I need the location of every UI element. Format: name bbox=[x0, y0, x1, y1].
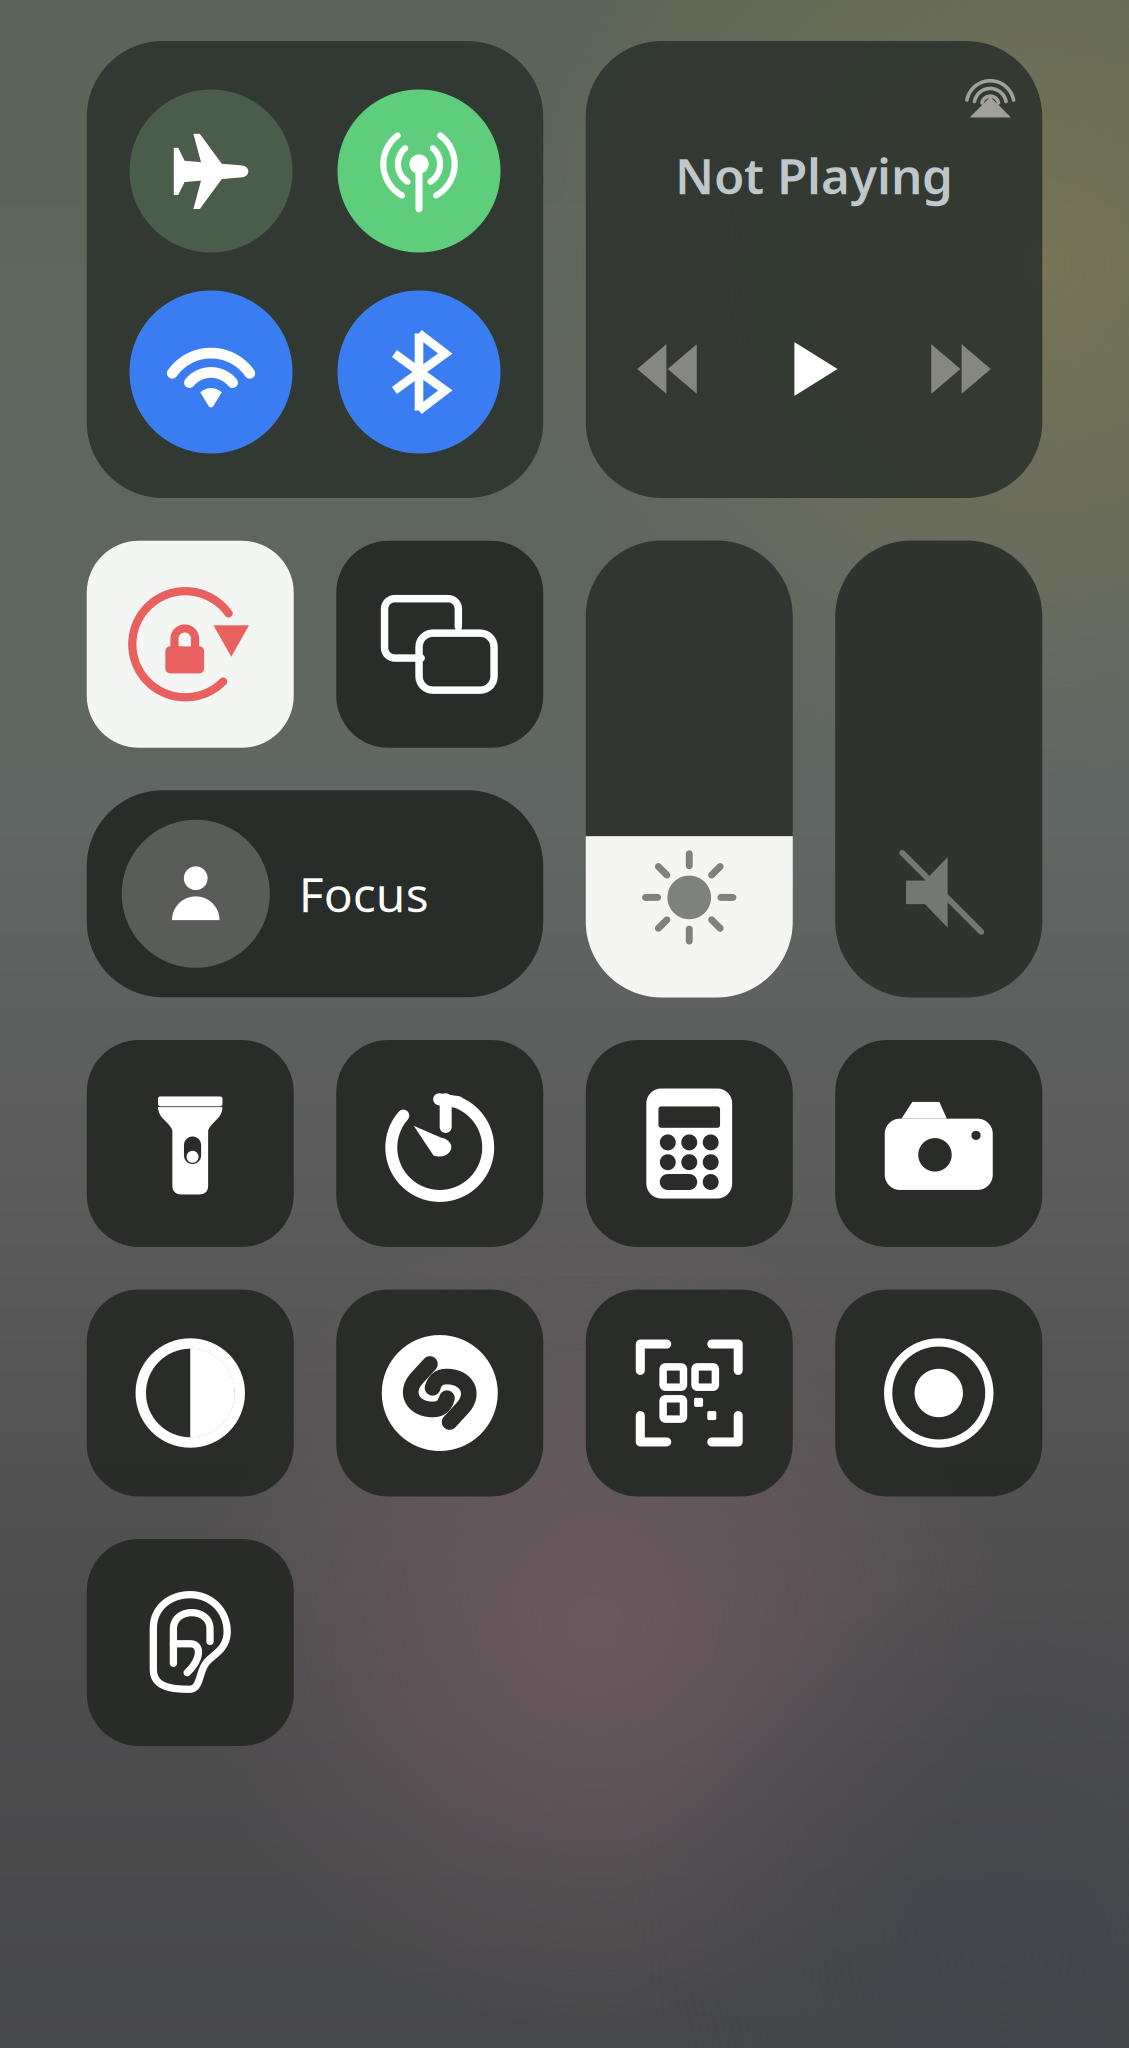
button[interactable]: Scan QR Code bbox=[586, 1289, 793, 1496]
button[interactable]: AirPlay bbox=[951, 54, 1029, 132]
button[interactable]: Screen Mirroring bbox=[336, 541, 543, 748]
button[interactable]: Flashlight bbox=[87, 1040, 294, 1247]
button[interactable]: Airplane Mode bbox=[129, 89, 292, 252]
button[interactable]: Hearing bbox=[87, 1539, 294, 1746]
button[interactable]: Wi-Fi bbox=[129, 290, 292, 453]
button[interactable]: Calculator bbox=[586, 1040, 793, 1247]
button[interactable]: Rewind bbox=[617, 319, 717, 419]
staticText: Not Playing bbox=[675, 142, 953, 208]
button[interactable]: Camera bbox=[835, 1040, 1042, 1247]
button[interactable]: Brightness bbox=[586, 540, 793, 997]
staticText: Focus bbox=[299, 862, 429, 926]
button[interactable]: Fast Forward bbox=[911, 319, 1011, 419]
button[interactable]: Play bbox=[764, 319, 864, 419]
button[interactable]: Dark Mode bbox=[87, 1289, 294, 1496]
button[interactable]: Screen Recording bbox=[835, 1289, 1042, 1496]
button[interactable]: Focus bbox=[87, 790, 543, 997]
button[interactable]: Timer bbox=[336, 1040, 543, 1247]
button[interactable]: Cellular Data bbox=[337, 89, 500, 252]
button[interactable]: Music Recognition bbox=[336, 1289, 543, 1496]
button[interactable]: Rotation Lock bbox=[87, 541, 294, 748]
button[interactable]: Volume bbox=[835, 540, 1042, 997]
button[interactable]: Bluetooth bbox=[337, 290, 500, 453]
